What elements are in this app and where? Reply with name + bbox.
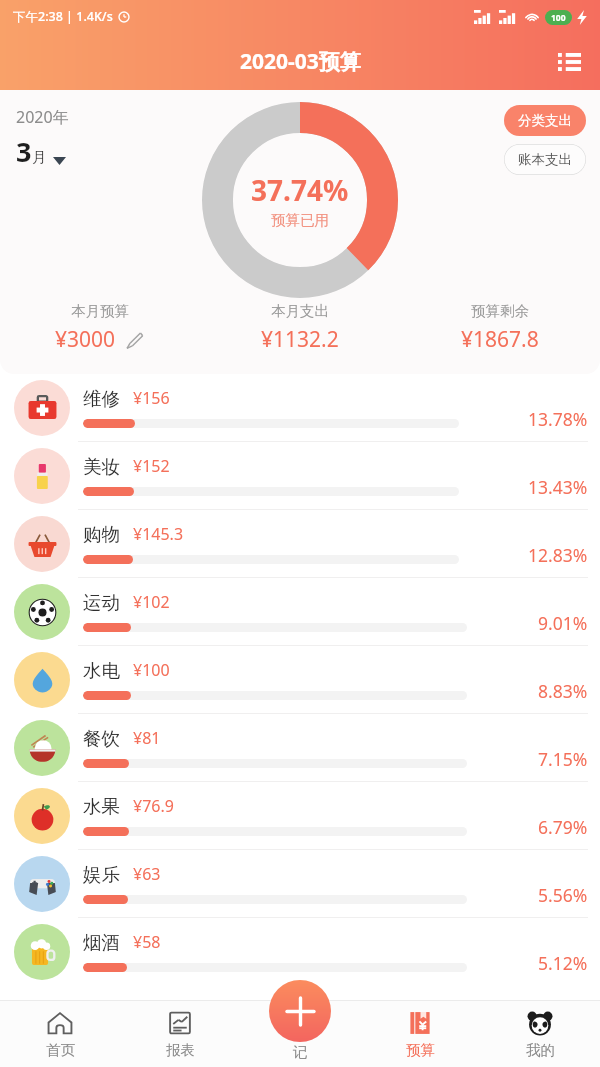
staticText: 购物 <box>83 523 120 546</box>
staticText: ¥81 <box>133 727 161 749</box>
staticText: 水果 <box>83 795 120 818</box>
staticText: 下午2:38 | 1.4K/s <box>13 8 113 25</box>
staticText: 烟酒 <box>83 931 120 954</box>
staticText: 记 <box>293 1043 308 1061</box>
button[interactable]: 餐饮 <box>0 713 600 781</box>
staticText: ¥76.9 <box>133 795 174 817</box>
staticText: 2020年 <box>16 106 69 128</box>
staticText: ¥100 <box>133 659 170 681</box>
staticText: 我的 <box>526 1041 555 1059</box>
button[interactable]: 报表 <box>120 1001 240 1067</box>
button[interactable]: 我的 <box>480 1001 600 1067</box>
button[interactable]: 美妆 <box>0 441 600 509</box>
staticText: 5.56% <box>538 883 588 907</box>
staticText: 分类支出 <box>518 112 572 129</box>
staticText: 本月预算 <box>71 302 129 320</box>
staticText: ¥1132.2 <box>261 325 339 354</box>
staticText: ¥3000 <box>55 325 116 354</box>
button[interactable]: 2020年 <box>16 106 77 176</box>
staticText: 预算已用 <box>271 211 329 229</box>
button[interactable]: Edit budget <box>123 329 145 351</box>
staticText: ¥102 <box>133 591 170 613</box>
staticText: ¥145.3 <box>133 523 184 545</box>
staticText: 2020-03预算 <box>240 47 361 76</box>
staticText: 7.15% <box>538 747 588 771</box>
staticText: 娱乐 <box>83 863 120 886</box>
button[interactable]: 首页 <box>0 1001 120 1067</box>
staticText: 报表 <box>166 1041 195 1059</box>
staticText: ¥1867.8 <box>461 325 539 354</box>
other: Add record <box>269 980 331 1042</box>
staticText: 餐饮 <box>83 727 120 750</box>
button[interactable]: 烟酒 <box>0 917 600 985</box>
staticText: ¥58 <box>133 931 161 953</box>
button[interactable]: Menu <box>546 39 592 85</box>
staticText: ¥63 <box>133 863 161 885</box>
button[interactable]: 娱乐 <box>0 849 600 917</box>
staticText: 美妆 <box>83 455 120 478</box>
staticText: 13.43% <box>528 475 588 499</box>
staticText: 37.74% <box>251 171 349 209</box>
staticText: 预算 <box>406 1041 435 1059</box>
staticText: 月 <box>32 149 46 167</box>
button[interactable]: 水电 <box>0 645 600 713</box>
staticText: 13.78% <box>528 407 588 431</box>
staticText: ¥152 <box>133 455 170 477</box>
staticText: 8.83% <box>538 679 588 703</box>
staticText: 预算剩余 <box>471 302 529 320</box>
staticText: 6.79% <box>538 815 588 839</box>
button[interactable]: 购物 <box>0 509 600 577</box>
button[interactable]: 预算 <box>360 1001 480 1067</box>
staticText: 12.83% <box>528 543 588 567</box>
staticText: 本月支出 <box>271 302 329 320</box>
button[interactable]: 分类支出 <box>504 105 586 136</box>
button[interactable]: 维修 <box>0 374 600 441</box>
button[interactable]: 账本支出 <box>504 144 586 175</box>
staticText: 首页 <box>46 1041 75 1059</box>
button[interactable]: Add record <box>245 980 355 1067</box>
button[interactable]: 水果 <box>0 781 600 849</box>
staticText: 9.01% <box>538 611 588 635</box>
staticText: 100 <box>551 12 566 24</box>
staticText: 水电 <box>83 659 120 682</box>
button[interactable]: 运动 <box>0 577 600 645</box>
staticText: 账本支出 <box>518 151 572 168</box>
staticText: 3 <box>16 133 32 170</box>
staticText: 5.12% <box>538 951 588 975</box>
staticText: 运动 <box>83 591 120 614</box>
staticText: 维修 <box>83 387 120 410</box>
staticText: ¥156 <box>133 387 170 409</box>
